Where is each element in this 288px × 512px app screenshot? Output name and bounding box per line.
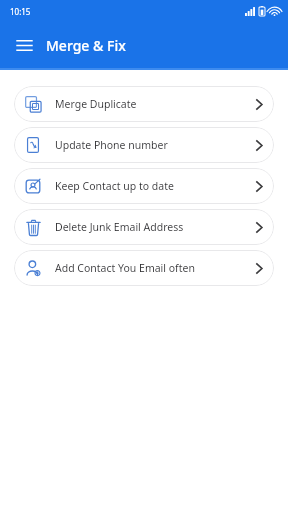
button[interactable]: Add Contact You Email often: [14, 250, 274, 286]
staticText: Merge & Fix: [46, 36, 126, 55]
staticText: Delete Junk Email Address: [55, 220, 244, 234]
button[interactable]: Update Phone number: [14, 127, 274, 163]
button[interactable]: Merge Duplicate: [14, 86, 274, 122]
staticText: Merge Duplicate: [55, 97, 244, 111]
button[interactable]: Open navigation menu: [10, 31, 38, 59]
button[interactable]: Delete Junk Email Address: [14, 209, 274, 245]
button[interactable]: Keep Contact up to date: [14, 168, 274, 204]
staticText: Add Contact You Email often: [55, 261, 244, 275]
staticText: Keep Contact up to date: [55, 179, 244, 193]
staticText: 10:15: [10, 6, 31, 17]
staticText: Update Phone number: [55, 138, 244, 152]
